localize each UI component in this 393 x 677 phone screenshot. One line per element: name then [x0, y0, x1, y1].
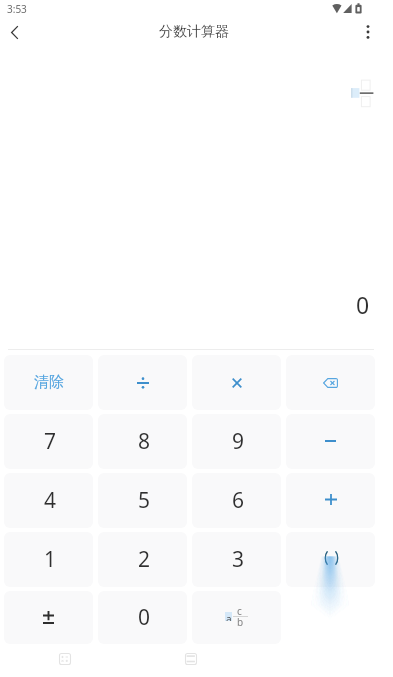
- button[interactable]: Formulas: [175, 643, 207, 675]
- button[interactable]: Calculator: [49, 643, 81, 675]
- button[interactable]: 4: [4, 473, 93, 528]
- staticText: 7: [44, 427, 57, 456]
- staticText: 3:53: [7, 2, 27, 16]
- button[interactable]: 清除: [4, 355, 93, 410]
- other: Minus: [325, 436, 336, 446]
- staticText: 8: [138, 427, 151, 456]
- staticText: 0: [138, 603, 151, 632]
- button[interactable]: 8: [98, 414, 187, 469]
- other: Mixed fraction: [225, 610, 248, 626]
- button[interactable]: 0: [98, 591, 187, 644]
- button[interactable]: 5: [98, 473, 187, 528]
- button[interactable]: 3: [192, 532, 281, 587]
- staticText: 分数计算器: [159, 23, 229, 41]
- button[interactable]: More options: [345, 10, 391, 54]
- staticText: 6: [232, 486, 245, 515]
- button[interactable]: Multiply: [192, 355, 281, 410]
- button[interactable]: 7: [4, 414, 93, 469]
- button[interactable]: Mixed fraction: [192, 591, 281, 644]
- staticText: 9: [232, 427, 245, 456]
- staticText: a: [226, 612, 232, 621]
- other: Parentheses: [324, 551, 339, 565]
- staticText: 1: [44, 545, 57, 574]
- button[interactable]: 2: [98, 532, 187, 587]
- staticText: c: [237, 604, 242, 618]
- staticText: 清除: [34, 373, 64, 392]
- button[interactable]: Minus: [286, 414, 375, 469]
- staticText: 3: [232, 545, 245, 574]
- staticText: 0: [356, 289, 370, 320]
- staticText: b: [237, 615, 244, 629]
- button[interactable]: Divide: [98, 355, 187, 410]
- staticText: 2: [138, 545, 151, 574]
- button[interactable]: [286, 591, 375, 644]
- button[interactable]: 9: [192, 414, 281, 469]
- other: Backspace: [323, 378, 338, 388]
- staticText: 4: [44, 486, 57, 515]
- staticText: 5: [138, 486, 151, 515]
- button[interactable]: Plus minus: [4, 591, 93, 644]
- other: Multiply: [232, 378, 242, 388]
- button[interactable]: Backspace: [286, 355, 375, 410]
- button[interactable]: Parentheses: [286, 532, 375, 587]
- button[interactable]: Plus: [286, 473, 375, 528]
- other: Plus: [325, 494, 337, 505]
- button[interactable]: Back: [0, 10, 28, 54]
- other: Divide: [137, 377, 149, 389]
- other: Plus minus: [43, 611, 54, 624]
- button[interactable]: 1: [4, 532, 93, 587]
- button[interactable]: 6: [192, 473, 281, 528]
